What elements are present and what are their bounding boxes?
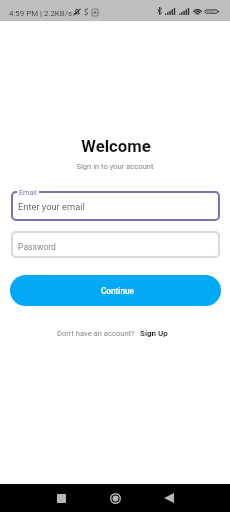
button[interactable]: Recents	[41, 484, 81, 512]
staticText: Don't have an account?	[57, 329, 135, 338]
button[interactable]: Continue	[10, 275, 221, 306]
staticText: Email	[19, 188, 37, 196]
staticText: Enter your email	[18, 201, 85, 212]
staticText: Sign in to your account	[0, 162, 230, 171]
button[interactable]: Home	[95, 484, 135, 512]
staticText: Welcome	[1, 137, 230, 157]
button[interactable]: Back	[149, 484, 189, 512]
button[interactable]: Enter your email	[11, 191, 220, 221]
staticText: 4:59 PM | 2.2KB/s	[9, 9, 73, 18]
button[interactable]: Sign Up	[140, 329, 168, 338]
staticText: Sign Up	[140, 329, 168, 338]
button[interactable]: Password	[11, 231, 220, 258]
staticText: Password	[18, 242, 56, 252]
staticText: Continue	[101, 286, 134, 296]
